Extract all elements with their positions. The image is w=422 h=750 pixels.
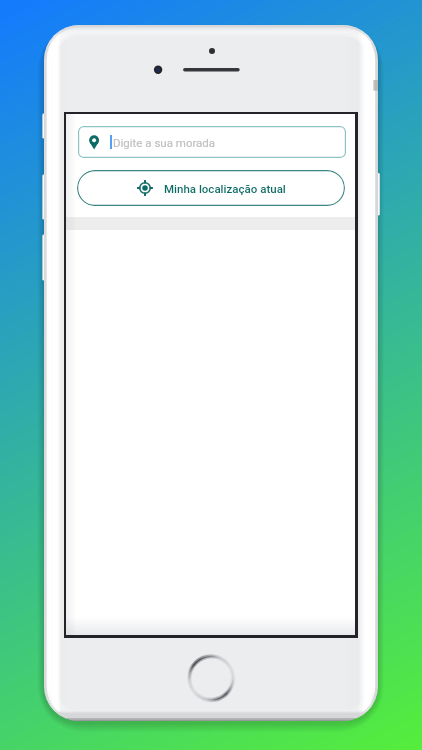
button[interactable]: Digite a sua morada bbox=[78, 126, 346, 158]
button[interactable]: Minha localização atual bbox=[77, 170, 345, 206]
staticText: Minha localização atual bbox=[164, 182, 286, 195]
staticText: Digite a sua morada bbox=[113, 136, 216, 149]
